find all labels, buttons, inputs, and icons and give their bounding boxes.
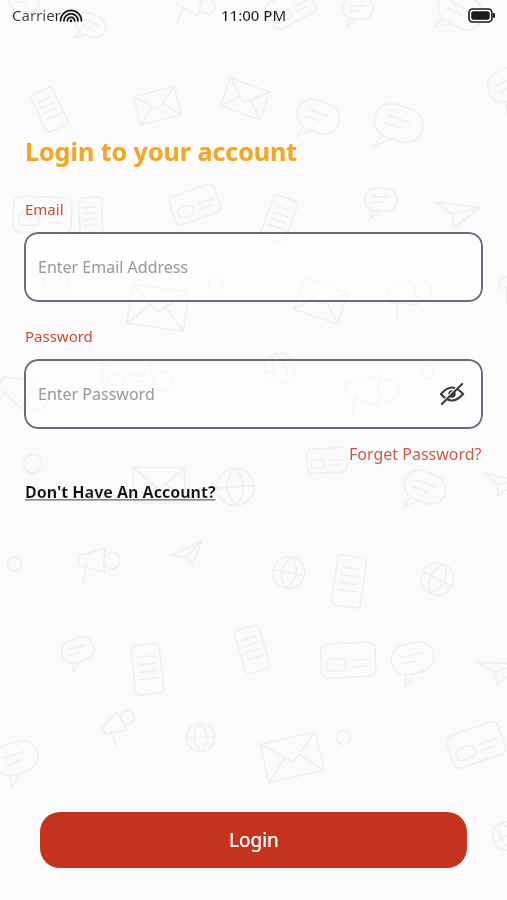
staticText: Email — [25, 199, 64, 219]
button[interactable]: Don't Have An Account? — [25, 481, 216, 503]
staticText: Login — [229, 827, 279, 853]
button[interactable]: Login — [40, 812, 467, 868]
button[interactable]: Enter Email Address — [24, 232, 483, 302]
staticText: Enter Password — [38, 383, 155, 405]
staticText: Login to your account — [25, 134, 298, 168]
button[interactable]: Enter Password — [24, 359, 483, 429]
staticText: Forget Password? — [349, 443, 482, 465]
staticText: Don't Have An Account? — [25, 481, 216, 503]
staticText: Carrier — [12, 5, 61, 25]
staticText: Password — [25, 326, 93, 346]
staticText: 11:00 PM — [221, 5, 287, 25]
button[interactable]: Show password — [435, 377, 469, 411]
staticText: Enter Email Address — [38, 256, 189, 278]
button[interactable]: Forget Password? — [349, 441, 507, 467]
